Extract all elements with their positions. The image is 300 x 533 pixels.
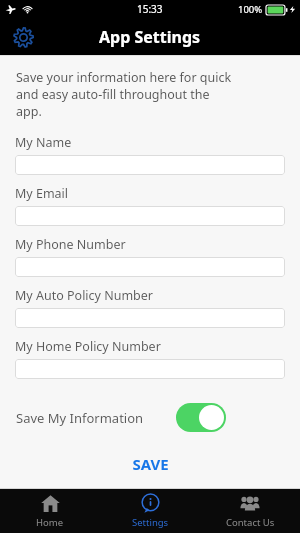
button[interactable]: Contact Us [200,489,300,533]
button[interactable] [15,206,285,226]
staticText: Home [36,516,64,529]
button[interactable]: Settings [8,22,38,52]
staticText: My Auto Policy Number [15,287,154,304]
button[interactable] [15,308,285,328]
staticText: Save My Information [16,409,144,427]
staticText: Contact Us [226,516,275,529]
staticText: My Email [15,185,69,202]
staticText: 15:33 [137,2,163,16]
button[interactable] [15,359,285,379]
staticText: Settings [132,516,169,529]
button[interactable] [15,155,285,175]
button[interactable]: Save My Information toggle [176,403,226,432]
button[interactable] [15,257,285,277]
button[interactable]: Settings [100,490,200,533]
staticText: App Settings [99,26,201,48]
button[interactable]: SAVE [112,450,189,478]
staticText: 100% [238,3,263,16]
staticText: SAVE [132,454,169,474]
staticText: Save your information here for quick and… [16,69,232,120]
staticText: My Phone Number [15,236,126,253]
staticText: My Home Policy Number [15,338,161,355]
staticText: My Name [15,134,72,151]
button[interactable]: Home [0,490,100,533]
